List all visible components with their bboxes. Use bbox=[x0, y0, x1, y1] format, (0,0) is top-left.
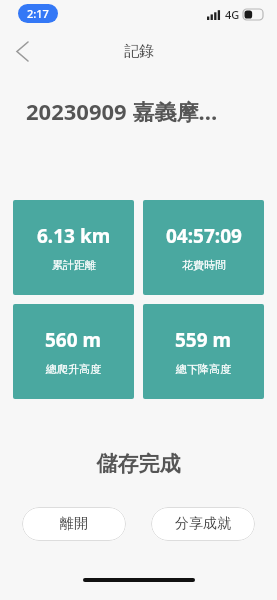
staticText: 儲存完成 bbox=[0, 451, 277, 477]
button[interactable]: 560 m bbox=[13, 304, 134, 399]
staticText: 離開 bbox=[60, 515, 88, 533]
button[interactable]: 6.13 km bbox=[13, 200, 134, 295]
staticText: 記錄 bbox=[124, 42, 154, 61]
staticText: 559 m bbox=[175, 327, 232, 353]
staticText: 4G bbox=[225, 7, 240, 22]
button[interactable]: 04:57:09 bbox=[143, 200, 264, 295]
button[interactable]: 離開 bbox=[22, 507, 126, 541]
button[interactable]: 分享成就 bbox=[151, 507, 255, 541]
staticText: 總下降高度 bbox=[176, 362, 231, 376]
staticText: 2:17 bbox=[27, 6, 49, 21]
staticText: 總爬升高度 bbox=[46, 362, 101, 376]
staticText: 20230909 嘉義摩… bbox=[26, 96, 251, 126]
staticText: 04:57:09 bbox=[166, 223, 242, 249]
button[interactable]: 559 m bbox=[143, 304, 264, 399]
staticText: 分享成就 bbox=[175, 515, 231, 533]
button[interactable]: Back bbox=[0, 29, 44, 73]
staticText: 累計距離 bbox=[52, 258, 96, 272]
staticText: 6.13 km bbox=[37, 223, 111, 249]
staticText: 花費時間 bbox=[182, 258, 226, 272]
staticText: 560 m bbox=[45, 327, 102, 353]
